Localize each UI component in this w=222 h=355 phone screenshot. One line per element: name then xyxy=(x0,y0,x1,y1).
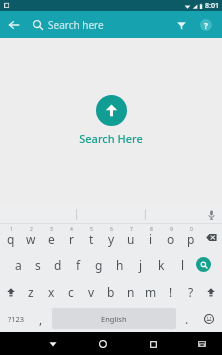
staticText: h xyxy=(116,257,124,273)
button[interactable]: m xyxy=(142,279,160,304)
button[interactable]: h xyxy=(110,252,129,277)
staticText: 6 xyxy=(110,226,113,233)
staticText: ? xyxy=(188,284,194,300)
staticText: q xyxy=(7,231,15,247)
button[interactable]: j xyxy=(131,252,150,277)
staticText: a xyxy=(15,257,22,273)
button[interactable]: z xyxy=(22,279,40,304)
button[interactable]: Shift xyxy=(202,279,220,304)
button[interactable]: s xyxy=(29,252,47,277)
staticText: y xyxy=(108,231,115,247)
button[interactable]: 2 xyxy=(22,225,40,250)
button[interactable]: f xyxy=(69,252,87,277)
staticText: English xyxy=(101,314,127,324)
button[interactable]: Filter xyxy=(169,13,193,37)
staticText: t xyxy=(89,231,94,247)
staticText: c xyxy=(68,284,74,300)
staticText: g xyxy=(95,257,103,273)
button[interactable]: Recents xyxy=(142,333,164,355)
button[interactable]: . xyxy=(178,306,196,331)
button[interactable]: ! xyxy=(162,279,180,304)
button[interactable]: 8 xyxy=(142,225,160,250)
staticText: ?123 xyxy=(8,314,25,324)
button[interactable]: a xyxy=(9,252,27,277)
staticText: 4 xyxy=(70,226,73,233)
button[interactable]: Search xyxy=(194,252,213,277)
button[interactable]: 1 xyxy=(2,225,20,250)
staticText: s xyxy=(35,257,41,273)
button[interactable]: English xyxy=(52,308,176,329)
staticText: u xyxy=(127,231,135,247)
staticText: o xyxy=(167,231,175,247)
staticText: Search Here xyxy=(79,131,143,146)
staticText: z xyxy=(28,284,34,300)
button[interactable]: x xyxy=(42,279,60,304)
button[interactable]: 0 xyxy=(182,225,200,250)
staticText: f xyxy=(76,257,81,273)
staticText: m xyxy=(145,284,157,300)
button[interactable]: l xyxy=(173,252,192,277)
staticText: 9 xyxy=(170,226,173,233)
button[interactable]: Search Here xyxy=(96,95,127,126)
button[interactable]: Back xyxy=(42,333,64,355)
button[interactable]: 5 xyxy=(82,225,100,250)
staticText: 0 xyxy=(190,226,193,233)
button[interactable]: d xyxy=(49,252,67,277)
button[interactable]: ? xyxy=(182,279,200,304)
button[interactable]: v xyxy=(82,279,100,304)
button[interactable]: Home xyxy=(92,333,114,355)
staticText: l xyxy=(181,257,185,273)
staticText: k xyxy=(158,257,165,273)
staticText: 1 xyxy=(10,226,13,233)
button[interactable]: c xyxy=(62,279,80,304)
button[interactable]: Emoji xyxy=(198,306,220,331)
staticText: Search here xyxy=(48,18,169,32)
button[interactable]: 4 xyxy=(62,225,80,250)
staticText: 7 xyxy=(130,226,133,233)
button[interactable]: , xyxy=(32,306,50,331)
button[interactable]: 3 xyxy=(42,225,60,250)
staticText: 8:01 xyxy=(205,1,219,11)
button[interactable]: k xyxy=(152,252,171,277)
staticText: n xyxy=(127,284,135,300)
staticText: 3 xyxy=(50,226,53,233)
button[interactable]: 9 xyxy=(162,225,180,250)
staticText: p xyxy=(187,231,195,247)
staticText: e xyxy=(48,231,55,247)
staticText: r xyxy=(69,231,74,247)
button[interactable]: Shift xyxy=(2,279,20,304)
button[interactable]: ?123 xyxy=(2,306,30,331)
staticText: i xyxy=(149,231,153,247)
staticText: 8 xyxy=(150,226,153,233)
staticText: w xyxy=(26,231,36,247)
staticText: x xyxy=(48,284,55,300)
staticText: b xyxy=(107,284,115,300)
button[interactable]: Voice input xyxy=(200,205,222,224)
staticText: ! xyxy=(169,284,173,300)
button[interactable]: Hide keyboard xyxy=(192,334,212,354)
staticText: 2 xyxy=(30,226,33,233)
button[interactable]: Back xyxy=(0,11,27,38)
staticText: j xyxy=(139,257,143,273)
staticText: ? xyxy=(204,20,208,31)
button[interactable]: g xyxy=(89,252,108,277)
button[interactable]: 7 xyxy=(122,225,140,250)
staticText: d xyxy=(54,257,62,273)
staticText: 5 xyxy=(90,226,93,233)
staticText: . xyxy=(185,311,189,327)
button[interactable]: Help xyxy=(193,12,219,38)
staticText: , xyxy=(39,311,43,327)
button[interactable]: Backspace xyxy=(202,225,220,250)
button[interactable]: b xyxy=(102,279,120,304)
button[interactable]: 6 xyxy=(102,225,120,250)
button[interactable]: n xyxy=(122,279,140,304)
staticText: v xyxy=(88,284,95,300)
